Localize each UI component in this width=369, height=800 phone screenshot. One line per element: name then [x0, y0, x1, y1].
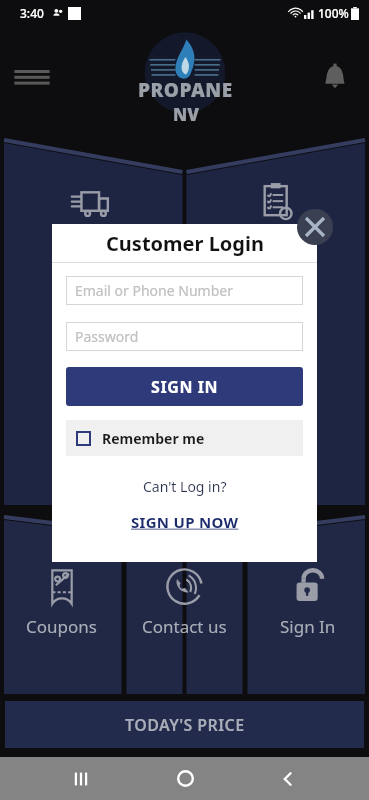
button[interactable]: Password [66, 322, 303, 351]
staticText: 3:40 [20, 5, 44, 21]
button[interactable]: Menu [12, 58, 52, 98]
button[interactable]: Notifications [319, 62, 351, 94]
staticText: Email or Phone Number [75, 281, 233, 300]
button[interactable]: Contact us [123, 565, 246, 665]
button[interactable]: SIGN IN [66, 367, 303, 406]
staticText: Password [75, 327, 139, 346]
button[interactable]: TODAY'S PRICE [5, 701, 364, 748]
button[interactable]: Close [297, 209, 333, 245]
button[interactable]: Recents [59, 757, 103, 800]
staticText: Sign In [280, 615, 336, 638]
button[interactable]: Delivery [184, 180, 369, 290]
staticText: Can't Log in? [143, 477, 227, 496]
staticText: Coupons [26, 615, 97, 638]
button[interactable]: Home [163, 757, 207, 800]
staticText: SIGN UP NOW [131, 512, 239, 532]
staticText: Contact us [142, 615, 227, 638]
staticText: NV [173, 103, 199, 126]
button[interactable]: Sign In [246, 565, 369, 665]
button[interactable]: Coupons [0, 565, 123, 665]
button[interactable]: Service [0, 180, 184, 290]
staticText: Customer Login [106, 230, 264, 257]
button[interactable]: SIGN UP NOW [52, 510, 317, 534]
button[interactable]: Can't Log in? [52, 475, 317, 498]
staticText: SIGN IN [151, 376, 219, 398]
button[interactable]: Back [266, 757, 310, 800]
staticText: Remember me [102, 429, 205, 448]
staticText: Service [64, 230, 121, 253]
button[interactable]: Remember me [66, 420, 303, 456]
button[interactable]: Email or Phone Number [66, 276, 303, 305]
staticText: TODAY'S PRICE [125, 714, 245, 736]
staticText: Delivery [244, 230, 309, 253]
staticText: PROPANE [138, 77, 233, 103]
staticText: 100% [318, 5, 349, 21]
